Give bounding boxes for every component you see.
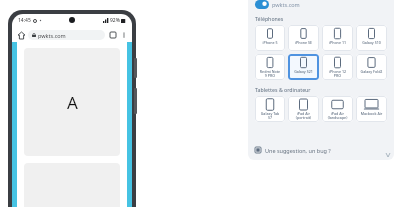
button[interactable]: iPhone 12 PRO (322, 54, 353, 80)
button[interactable]: Une suggestion, un bug ? (255, 142, 387, 158)
staticText: iPhone 12 PRO (322, 69, 353, 78)
button[interactable]: More options (119, 30, 128, 39)
staticText: 14:45 (18, 17, 31, 24)
staticText: pwkts.com (38, 32, 66, 39)
staticText: Galaxy Fold2 (356, 69, 387, 74)
staticText: Galaxy Tab S7 (255, 111, 285, 120)
staticText: A (67, 91, 78, 114)
staticText: iPad Air (landscape) (322, 111, 353, 120)
button[interactable]: Macbook Air (356, 96, 387, 122)
staticText: Galaxy S21 (288, 69, 319, 74)
staticText: Téléphones (255, 15, 284, 22)
staticText: Tablettes & ordinateur (255, 86, 311, 93)
staticText: iPad Air (portrait) (288, 111, 319, 120)
staticText: Une suggestion, un bug ? (265, 147, 331, 154)
button[interactable]: iPhone 11 (322, 25, 353, 51)
button[interactable]: iPhone SE (288, 25, 319, 51)
button[interactable]: pwkts.com (28, 30, 105, 40)
button[interactable]: Galaxy Tab S7 (255, 96, 285, 122)
staticText: Galaxy S10 (356, 40, 387, 45)
button[interactable]: iPhone 5 (255, 25, 285, 51)
button[interactable]: Galaxy S21 (288, 54, 319, 80)
button[interactable]: Galaxy Fold2 (356, 54, 387, 80)
staticText: Macbook Air (356, 111, 387, 116)
staticText: iPhone SE (288, 40, 319, 45)
button[interactable]: Home (16, 30, 26, 40)
staticText: Redmi Note 9 PRO (255, 69, 285, 78)
staticText: 92% (110, 17, 120, 24)
button[interactable]: A (24, 48, 120, 156)
staticText: pwkts.com (272, 1, 300, 8)
button[interactable]: iPad Air (portrait) (288, 96, 319, 122)
staticText: iPhone 11 (322, 40, 353, 45)
button[interactable]: pwkts.com (255, 0, 300, 9)
button[interactable]: Tabs (108, 30, 117, 39)
staticText: iPhone 5 (255, 40, 285, 45)
button[interactable]: Galaxy S10 (356, 25, 387, 51)
button[interactable]: Redmi Note 9 PRO (255, 54, 285, 80)
button[interactable]: iPad Air (landscape) (322, 96, 353, 122)
